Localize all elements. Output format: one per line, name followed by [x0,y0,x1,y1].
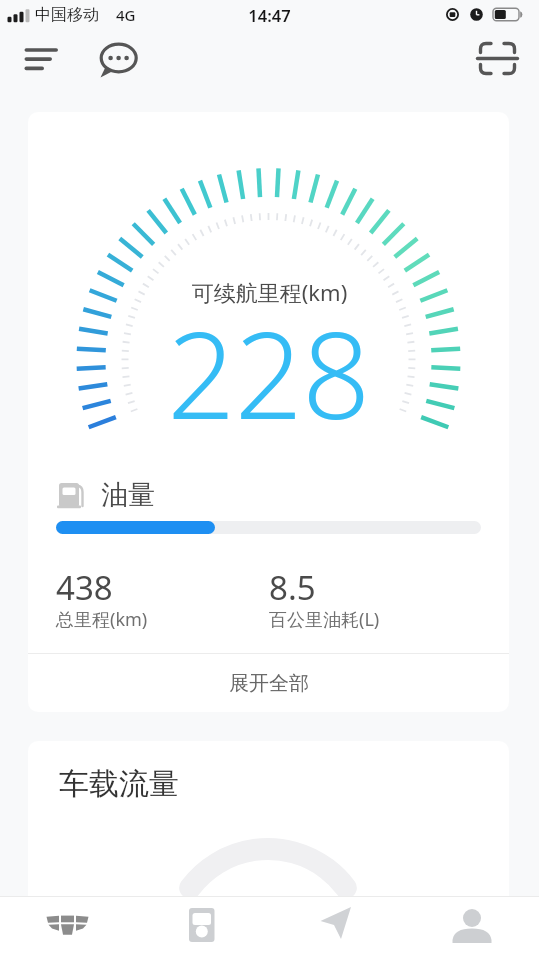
button[interactable]: 展开全部 [28,654,509,712]
staticText: 总里程(km) [56,607,148,632]
staticText: 可续航里程(km) [0,277,539,307]
staticText: 中国移动 [35,5,99,25]
button[interactable]: 车载流量 [28,741,509,897]
button[interactable] [14,38,68,80]
staticText: 228 [0,292,537,454]
button[interactable] [92,38,146,84]
staticText: 油量 [101,478,155,512]
staticText: 4G [116,5,136,25]
button[interactable] [404,896,539,960]
button[interactable] [269,896,404,960]
staticText: 展开全部 [229,671,309,696]
staticText: 百公里油耗(L) [269,607,380,632]
button[interactable] [134,896,269,960]
staticText: 8.5 [269,565,316,610]
staticText: 车载流量 [59,765,179,803]
staticText: 438 [56,565,113,610]
button[interactable] [0,896,134,960]
button[interactable] [469,36,525,82]
staticText: 14:47 [0,4,539,26]
